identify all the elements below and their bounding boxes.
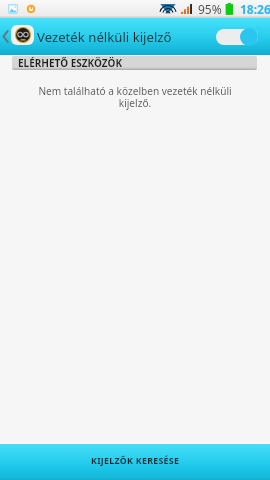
staticText: Nem található a közelben vezeték nélküli… — [36, 84, 234, 110]
staticText: 95% — [198, 1, 222, 17]
staticText: KIJELZŐK KERESÉSE — [91, 455, 180, 467]
staticText: Vezeték nélküli kijelző — [37, 28, 172, 46]
button[interactable]: Back — [0, 18, 11, 55]
staticText: 18:26 — [240, 1, 270, 17]
button[interactable]: KIJELZŐK KERESÉSE — [0, 444, 270, 480]
staticText: ELÉRHETŐ ESZKÖZÖK — [18, 56, 123, 70]
button[interactable]: Wireless display on — [216, 28, 258, 46]
